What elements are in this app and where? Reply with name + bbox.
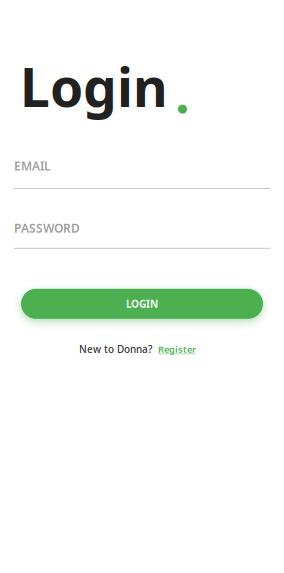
- button[interactable]: LOGIN: [21, 289, 263, 319]
- staticText: EMAIL: [14, 158, 51, 174]
- staticText: LOGIN: [126, 297, 158, 311]
- staticText: Login: [20, 50, 168, 123]
- staticText: Register: [158, 343, 196, 355]
- staticText: PASSWORD: [14, 220, 80, 236]
- staticText: New to Donna?: [79, 342, 152, 356]
- button[interactable]: Register: [158, 343, 196, 355]
